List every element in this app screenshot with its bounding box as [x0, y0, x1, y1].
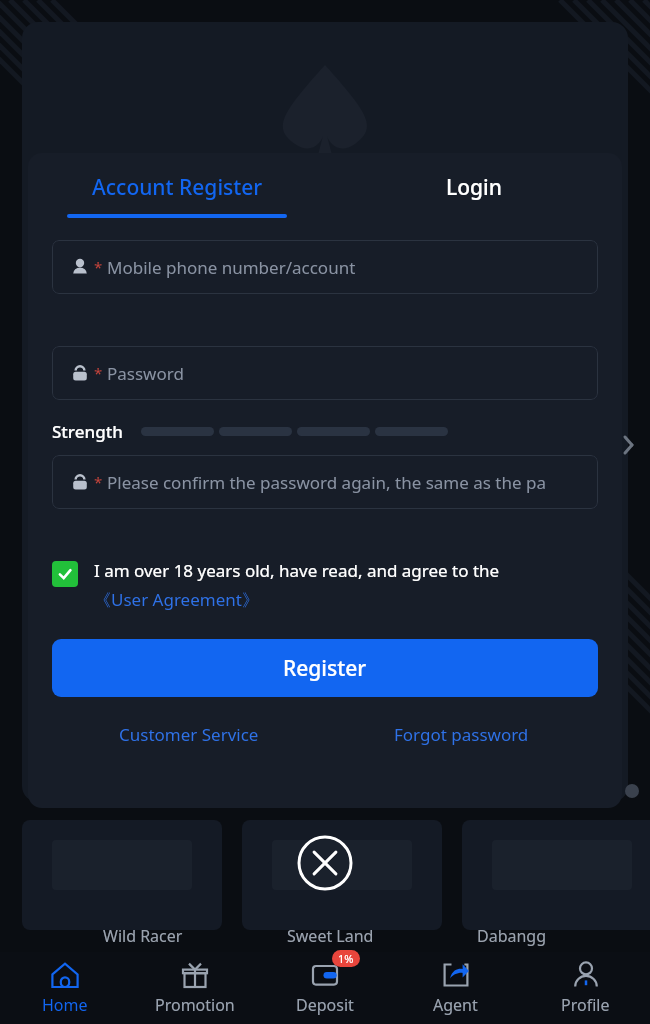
button[interactable]: Profile — [520, 952, 650, 1024]
staticText: Please confirm the password again, the s… — [107, 471, 546, 494]
staticText: Forgot password — [394, 723, 529, 746]
staticText: Deposit — [296, 994, 354, 1016]
button[interactable]: * — [52, 346, 598, 400]
button[interactable]: Home — [0, 952, 130, 1024]
staticText: Strength — [52, 420, 123, 443]
staticText: 1% — [338, 951, 354, 966]
staticText: Login — [446, 173, 502, 202]
staticText: Register — [283, 654, 367, 683]
button[interactable]: Account Register — [28, 173, 325, 218]
staticText: * — [94, 363, 103, 383]
staticText: Dabangg — [477, 925, 547, 947]
button[interactable]: * — [52, 455, 598, 509]
button[interactable]: Login — [325, 173, 622, 218]
button[interactable]: Customer Service — [52, 723, 325, 746]
staticText: Mobile phone number/account — [107, 256, 356, 279]
button[interactable]: Forgot password — [325, 723, 598, 746]
staticText: Agent — [433, 994, 478, 1016]
button[interactable]: 1% — [260, 952, 390, 1024]
button[interactable]: Agent — [390, 952, 520, 1024]
staticText: Profile — [561, 994, 610, 1016]
button[interactable]: Promotion — [130, 952, 260, 1024]
staticText: Password — [107, 362, 184, 385]
button[interactable]: I am over 18 years old, have read, and a… — [52, 559, 598, 611]
staticText: Account Register — [92, 173, 263, 202]
staticText: Customer Service — [119, 723, 259, 746]
staticText: Wild Racer — [103, 925, 183, 947]
staticText: 《User Agreement》 — [94, 588, 259, 611]
staticText: Home — [42, 994, 88, 1016]
button[interactable]: Close — [296, 834, 354, 892]
staticText: Promotion — [155, 994, 235, 1016]
staticText: * — [94, 257, 103, 277]
button[interactable]: * — [52, 240, 598, 294]
button[interactable]: Register — [52, 639, 598, 697]
staticText: * — [94, 472, 103, 492]
staticText: I am over 18 years old, have read, and a… — [94, 559, 500, 582]
staticText: Sweet Land — [287, 925, 374, 947]
